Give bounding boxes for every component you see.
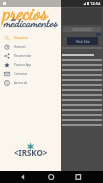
staticText: Puntuar App bbox=[14, 63, 32, 67]
staticText: LABORATORIO bbox=[72, 28, 93, 32]
staticText: 12:54 bbox=[90, 1, 101, 6]
button[interactable]: Acerca de bbox=[0, 78, 61, 87]
staticText: Búsqueda bbox=[14, 36, 28, 40]
staticText: precios bbox=[3, 2, 48, 25]
button[interactable]: Contactar bbox=[0, 69, 61, 78]
staticText: Historial bbox=[14, 45, 26, 49]
button[interactable]: Historial bbox=[0, 42, 61, 51]
staticText: Acerca de bbox=[14, 81, 28, 85]
staticText: medicamentos bbox=[4, 17, 58, 30]
staticText: de bbox=[11, 15, 16, 22]
staticText: Visit Site bbox=[76, 39, 90, 44]
button[interactable]: Puntuar App bbox=[0, 60, 61, 69]
staticText: Recomendar bbox=[14, 54, 32, 58]
button[interactable]: Recomendar bbox=[0, 51, 61, 60]
staticText: Contactar bbox=[14, 72, 28, 76]
staticText: <IRSKO> bbox=[14, 147, 48, 158]
button[interactable]: Búsqueda bbox=[0, 33, 61, 42]
